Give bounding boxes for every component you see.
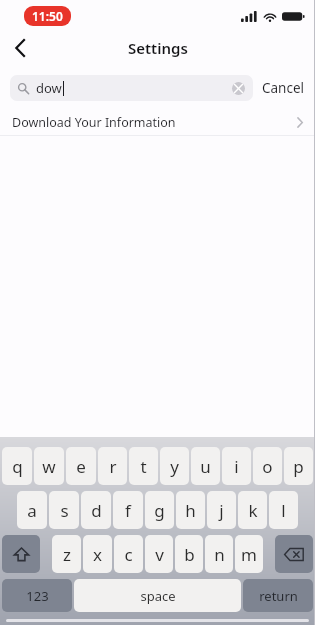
button[interactable]: g [145, 491, 174, 529]
staticText: q [12, 455, 23, 478]
staticText: n [214, 543, 225, 566]
staticText: g [154, 499, 165, 522]
button[interactable]: Backspace [275, 535, 313, 573]
button[interactable]: l [269, 491, 298, 529]
button[interactable]: v [145, 535, 173, 573]
staticText: p [293, 455, 304, 478]
staticText: u [200, 455, 211, 478]
staticText: i [234, 455, 239, 478]
staticText: b [184, 543, 195, 566]
button[interactable]: z [52, 535, 81, 573]
button[interactable]: o [253, 447, 282, 485]
button[interactable]: Clear text [232, 82, 245, 95]
staticText: 123 [26, 587, 49, 605]
button[interactable]: r [98, 447, 127, 485]
staticText: w [42, 455, 56, 478]
staticText: t [140, 455, 147, 478]
staticText: Cancel [262, 79, 305, 97]
staticText: h [185, 499, 196, 522]
button[interactable]: i [222, 447, 251, 485]
button[interactable]: y [160, 447, 189, 485]
staticText: return [259, 587, 298, 605]
button[interactable]: f [113, 491, 143, 529]
staticText: dow [36, 79, 62, 97]
button[interactable]: d [81, 491, 111, 529]
staticText: Settings [128, 38, 188, 58]
staticText: j [219, 499, 224, 522]
staticText: l [281, 499, 286, 522]
staticText: x [93, 543, 102, 566]
button[interactable]: p [284, 447, 313, 485]
staticText: y [170, 455, 179, 478]
staticText: m [241, 543, 257, 566]
staticText: e [76, 455, 86, 478]
button[interactable]: a [17, 491, 47, 529]
button[interactable]: space [74, 579, 241, 612]
button[interactable]: Download Your Information [0, 109, 315, 135]
staticText: z [63, 543, 71, 566]
button[interactable]: k [238, 491, 267, 529]
button[interactable]: return [243, 579, 313, 612]
staticText: a [27, 499, 37, 522]
button[interactable]: n [205, 535, 233, 573]
button[interactable]: h [176, 491, 205, 529]
button[interactable]: w [34, 447, 64, 485]
staticText: c [124, 543, 133, 566]
button[interactable]: e [66, 447, 96, 485]
button[interactable]: b [175, 535, 203, 573]
staticText: o [262, 455, 273, 478]
button[interactable]: t [129, 447, 158, 485]
staticText: k [248, 499, 258, 522]
staticText: d [91, 499, 102, 522]
button[interactable]: c [114, 535, 143, 573]
button[interactable]: u [191, 447, 220, 485]
button[interactable]: x [83, 535, 112, 573]
staticText: space [140, 587, 176, 605]
staticText: v [155, 543, 164, 566]
button[interactable]: q [2, 447, 32, 485]
button[interactable]: m [235, 535, 263, 573]
button[interactable]: dow [10, 75, 253, 101]
staticText: r [109, 455, 117, 478]
staticText: Download Your Information [12, 114, 176, 131]
button[interactable]: j [207, 491, 236, 529]
button[interactable]: Back [0, 32, 40, 64]
button[interactable]: Shift [2, 535, 40, 573]
staticText: f [125, 499, 131, 522]
button[interactable]: 123 [2, 579, 72, 612]
button[interactable]: Cancel [262, 75, 305, 101]
staticText: 11:50 [32, 8, 63, 24]
button[interactable]: s [49, 491, 79, 529]
staticText: s [60, 499, 69, 522]
